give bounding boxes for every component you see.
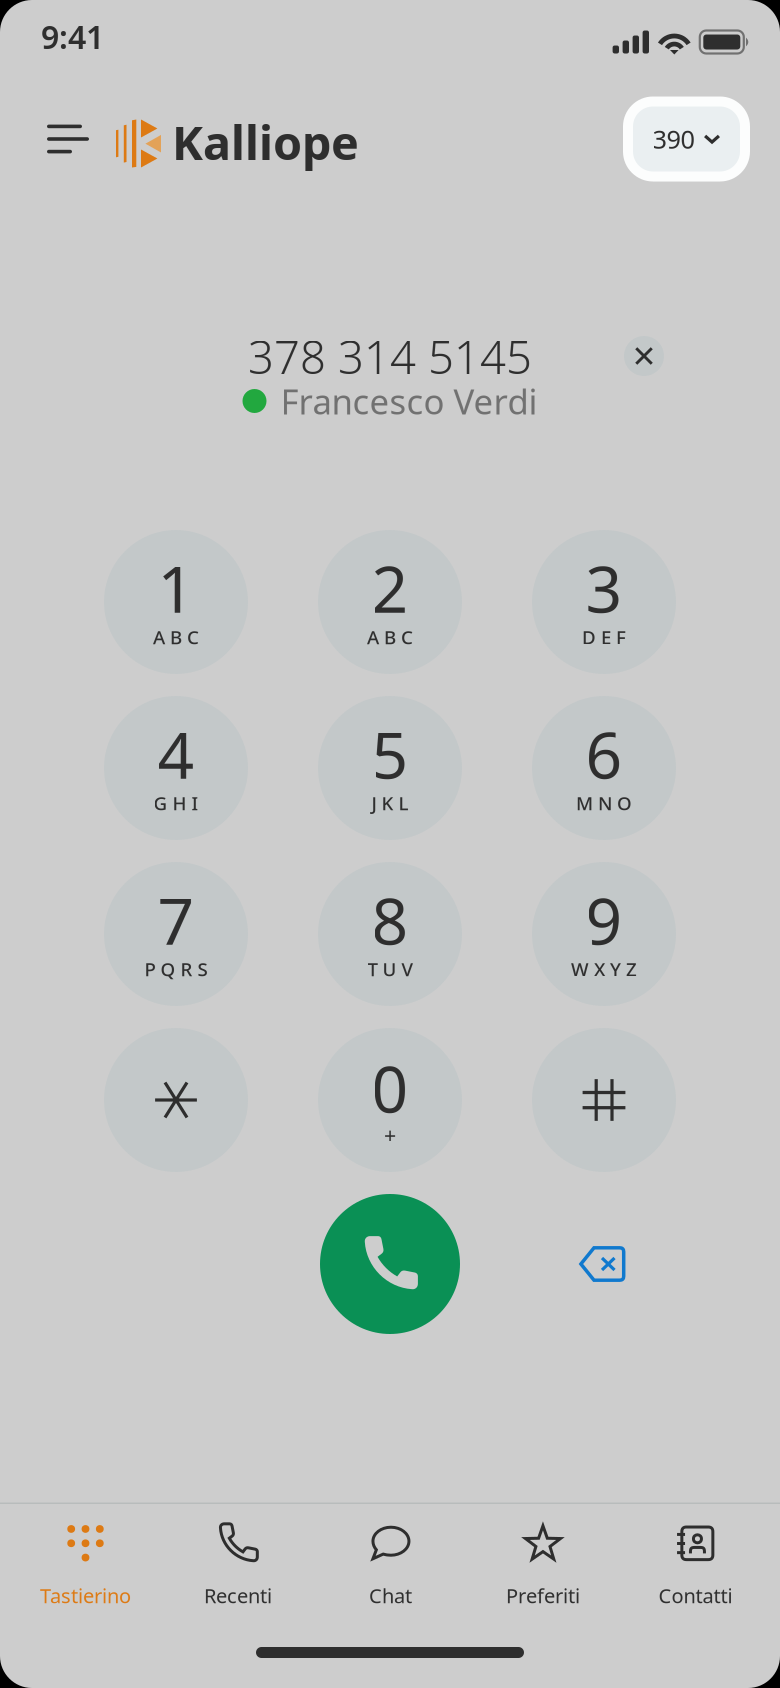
staticText: P Q R S	[144, 957, 207, 981]
staticText: Tastierino	[40, 1582, 131, 1609]
staticText: Recenti	[204, 1582, 272, 1609]
button[interactable]: 4	[104, 696, 248, 840]
staticText: 390	[652, 122, 694, 156]
staticText: M N O	[576, 791, 632, 815]
button[interactable]: 3	[532, 530, 676, 674]
button[interactable]: Chat	[314, 1526, 467, 1606]
button[interactable]	[532, 1028, 676, 1172]
button[interactable]: Recenti	[162, 1526, 314, 1606]
staticText: 9:41	[41, 15, 104, 58]
button[interactable]: Clear	[612, 324, 676, 388]
button[interactable]: 1	[104, 530, 248, 674]
staticText: T U V	[367, 957, 412, 981]
button[interactable]	[104, 1028, 248, 1172]
staticText: 4	[157, 711, 194, 796]
staticText: G H I	[153, 791, 198, 815]
staticText: 7	[157, 877, 194, 962]
staticText: +	[384, 1121, 396, 1149]
button[interactable]: 2	[318, 530, 462, 674]
staticText: 1	[157, 545, 194, 630]
staticText: W X Y Z	[571, 957, 637, 981]
staticText: 9	[585, 877, 622, 962]
button[interactable]: Preferiti	[467, 1526, 619, 1606]
button[interactable]: Call	[320, 1194, 460, 1334]
staticText: A B C	[153, 625, 199, 649]
staticText: Preferiti	[506, 1582, 580, 1609]
staticText: 3	[585, 545, 622, 630]
button[interactable]: 6	[532, 696, 676, 840]
staticText: 0	[371, 1045, 408, 1130]
staticText: 378 314 5145	[248, 326, 532, 387]
staticText: Chat	[369, 1582, 412, 1609]
staticText: 6	[585, 711, 622, 796]
staticText: J K L	[371, 791, 408, 815]
button[interactable]: 0	[318, 1028, 462, 1172]
button[interactable]: Contatti	[619, 1526, 772, 1606]
button[interactable]: 5	[318, 696, 462, 840]
staticText: D E F	[582, 625, 626, 649]
staticText: Francesco Verdi	[280, 378, 537, 424]
staticText: A B C	[367, 625, 413, 649]
button[interactable]: Tastierino	[9, 1526, 162, 1606]
staticText: Contatti	[658, 1582, 732, 1609]
button[interactable]: Menu	[47, 102, 115, 176]
staticText: Kalliope	[172, 111, 359, 173]
button[interactable]: 8	[318, 862, 462, 1006]
button[interactable]: Delete	[550, 1224, 654, 1304]
button[interactable]: 390	[623, 96, 750, 181]
staticText: 5	[371, 711, 408, 796]
button[interactable]: 9	[532, 862, 676, 1006]
button[interactable]: 7	[104, 862, 248, 1006]
staticText: 8	[371, 877, 408, 962]
staticText: 2	[371, 545, 408, 630]
